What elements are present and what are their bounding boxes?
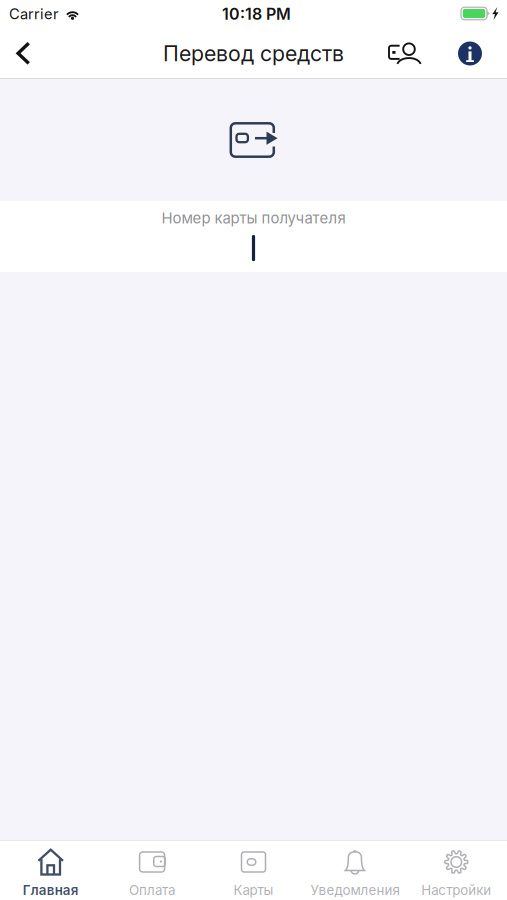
staticText: Главная [23,882,79,898]
button[interactable]: Настройки [406,840,507,900]
staticText: Carrier [9,5,59,23]
staticText: Номер карты получателя [161,209,345,227]
staticText: Оплата [129,882,175,898]
button[interactable]: Back [1,28,46,79]
staticText: Настройки [421,882,491,898]
staticText: Уведомления [310,882,399,898]
button[interactable]: Information [448,28,492,79]
button[interactable]: Карты [203,840,304,900]
button[interactable]: Choose recipient [383,28,427,79]
button[interactable]: Уведомления [304,840,406,900]
button[interactable]: Оплата [101,840,203,900]
staticText: Карты [233,882,273,898]
staticText: Перевод средств [163,41,344,66]
staticText: 10:18 PM [222,4,291,24]
button[interactable]: Главная [0,840,101,900]
